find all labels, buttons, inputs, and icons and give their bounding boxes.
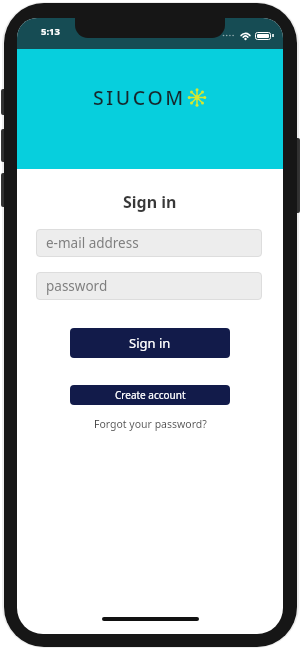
staticText: password [46, 277, 108, 295]
staticText: Create account [115, 388, 186, 402]
staticText: SIUCOM [93, 84, 186, 110]
staticText: e-mail address [46, 234, 139, 252]
button[interactable]: Sign in [70, 328, 230, 358]
button[interactable]: password [36, 272, 262, 300]
staticText: Sign in [129, 334, 171, 352]
staticText: 5:13 [41, 25, 60, 38]
staticText: Sign in [123, 191, 177, 213]
staticText: Forgot your password? [94, 417, 207, 431]
button[interactable]: Create account [70, 385, 230, 405]
button[interactable]: e-mail address [36, 229, 262, 257]
button[interactable]: Forgot your password? [17, 415, 283, 433]
